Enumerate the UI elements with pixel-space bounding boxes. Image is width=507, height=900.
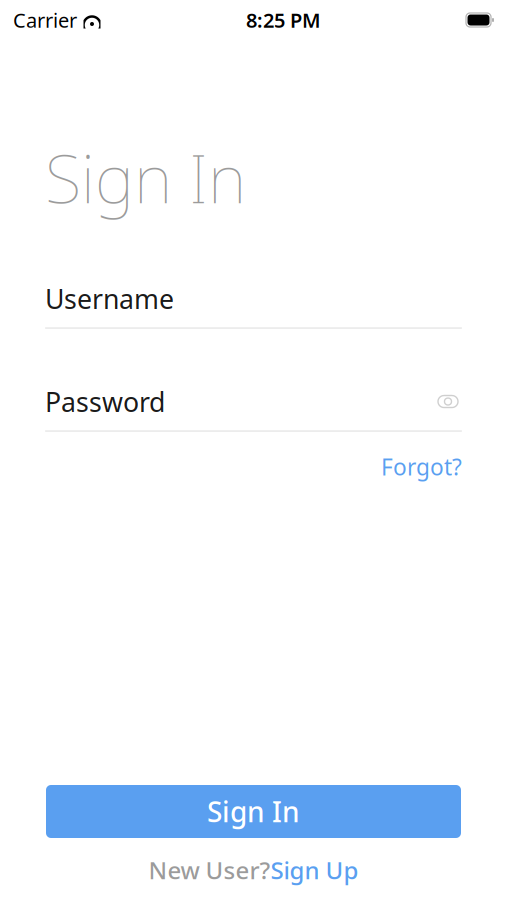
button[interactable]: Show password (434, 389, 462, 413)
staticText: Sign Up (270, 854, 358, 886)
staticText: 8:25 PM (246, 7, 321, 33)
staticText: Password (45, 384, 165, 419)
button[interactable]: New User? (0, 854, 507, 886)
staticText: Carrier (13, 7, 77, 33)
staticText: Username (45, 281, 174, 316)
button[interactable]: Forgot? (381, 451, 462, 482)
staticText: New User? (148, 854, 270, 886)
staticText: Forgot? (381, 451, 462, 482)
staticText: Sign In (45, 133, 246, 221)
button[interactable]: Sign In (46, 785, 461, 838)
staticText: Sign In (207, 793, 300, 830)
